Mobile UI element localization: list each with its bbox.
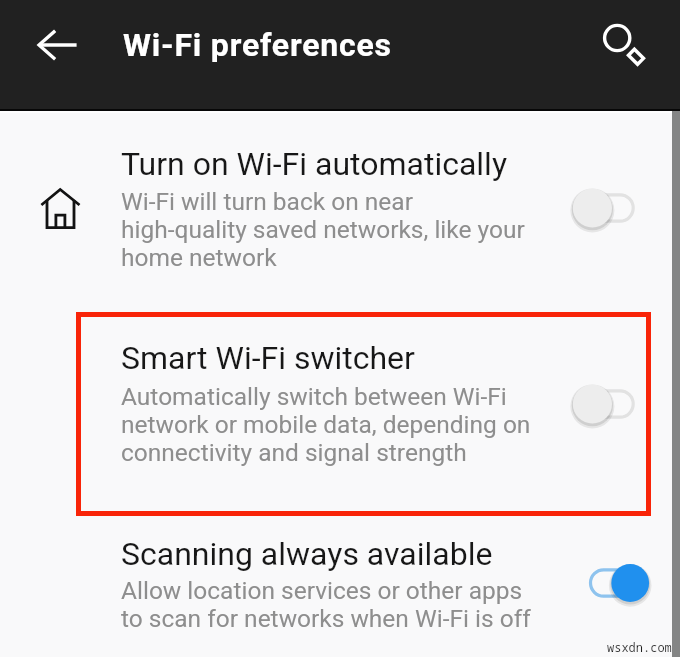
staticText: Scanning always available xyxy=(121,535,493,573)
button[interactable] xyxy=(0,325,680,449)
button[interactable] xyxy=(0,521,680,629)
button[interactable]: Smart Wi-Fi switcher xyxy=(570,379,654,429)
staticText: Smart Wi-Fi switcher xyxy=(121,339,415,377)
staticText: wsxdn.com xyxy=(607,639,672,655)
button[interactable]: Back xyxy=(28,20,78,70)
staticText: Allow location services or other apps to… xyxy=(121,576,531,633)
staticText: Automatically switch between Wi-Fi netwo… xyxy=(121,382,531,467)
staticText: Wi-Fi preferences xyxy=(123,26,392,64)
button[interactable]: Turn on Wi-Fi automatically xyxy=(570,183,654,233)
button[interactable]: Scanning always available xyxy=(570,558,654,608)
button[interactable]: Search xyxy=(598,19,650,71)
staticText: Turn on Wi-Fi automatically xyxy=(121,145,508,183)
button[interactable] xyxy=(0,131,680,254)
staticText: Wi-Fi will turn back on near high-qualit… xyxy=(121,187,525,272)
